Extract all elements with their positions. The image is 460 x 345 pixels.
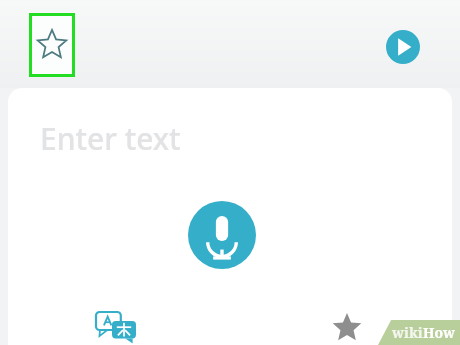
- button[interactable]: Voice input: [188, 201, 256, 269]
- button[interactable]: Play: [386, 30, 420, 64]
- button[interactable]: Translate languages: [96, 312, 136, 342]
- staticText: How: [423, 323, 456, 342]
- staticText: wiki: [392, 323, 423, 342]
- button[interactable]: Starred: [332, 313, 362, 343]
- button[interactable]: Enter text: [40, 118, 181, 159]
- button[interactable]: Favorite: [32, 16, 72, 74]
